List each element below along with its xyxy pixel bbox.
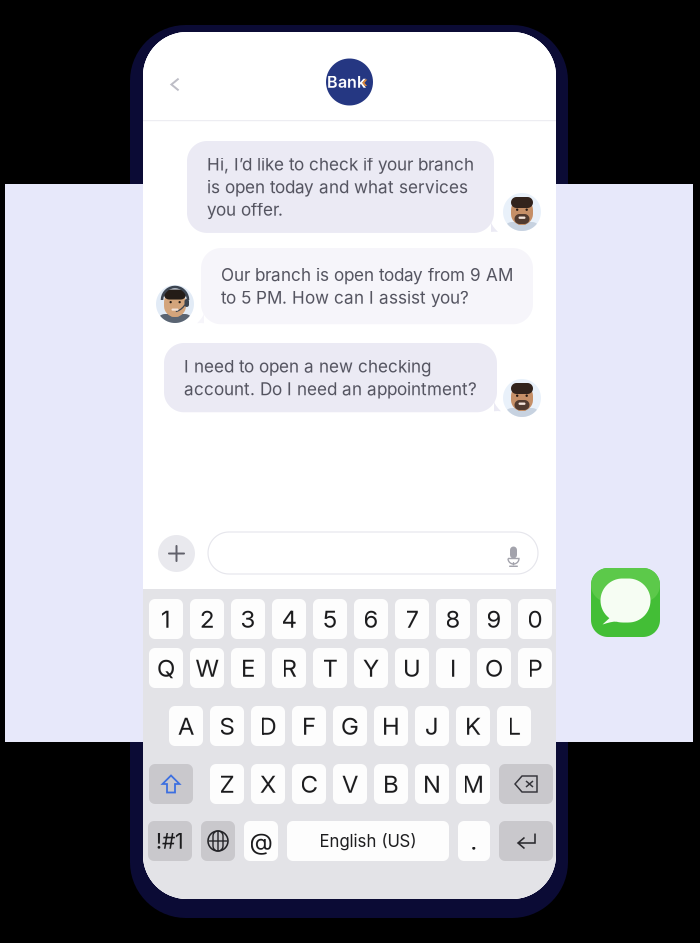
staticText: C	[300, 769, 317, 798]
button[interactable]: D	[251, 706, 285, 746]
staticText: F	[302, 711, 316, 740]
staticText: 6	[363, 604, 378, 633]
staticText: S	[219, 711, 234, 740]
staticText: English (US)	[319, 831, 416, 851]
button[interactable]: !#1	[148, 821, 192, 861]
staticText: k	[357, 72, 366, 92]
button[interactable]: 7	[395, 599, 429, 639]
button[interactable]: H	[374, 706, 408, 746]
staticText: 4	[281, 604, 296, 633]
staticText: Our branch is open today from 9 AM	[221, 264, 513, 285]
button[interactable]: M	[456, 764, 490, 804]
staticText: A	[178, 711, 194, 740]
button[interactable]: Y	[354, 648, 388, 688]
button[interactable]: K	[456, 706, 490, 746]
staticText: Q	[157, 653, 175, 682]
button[interactable]: F	[292, 706, 326, 746]
staticText: 3	[240, 604, 255, 633]
staticText: P	[527, 653, 542, 682]
button[interactable]: Back	[153, 62, 197, 106]
button[interactable]: P	[518, 648, 552, 688]
staticText: X	[260, 769, 276, 798]
staticText: W	[195, 653, 218, 682]
staticText: account. Do I need an appointment?	[184, 379, 477, 399]
staticText: J	[425, 711, 439, 740]
staticText: H	[382, 711, 400, 740]
button[interactable]: 9	[477, 599, 511, 639]
staticText: 8	[445, 604, 460, 633]
staticText: .	[470, 826, 477, 855]
button[interactable]: B	[374, 764, 408, 804]
button[interactable]: Message	[208, 532, 538, 574]
staticText: !#1	[156, 828, 184, 854]
button[interactable]: T	[313, 648, 347, 688]
staticText: Y	[363, 653, 379, 682]
staticText: 1	[161, 604, 171, 633]
button[interactable]: O	[477, 648, 511, 688]
staticText: G	[341, 711, 359, 740]
button[interactable]: V	[333, 764, 367, 804]
staticText: 7	[405, 604, 418, 633]
staticText: I	[450, 653, 456, 682]
button[interactable]: Shift	[149, 764, 193, 804]
staticText: O	[485, 653, 503, 682]
button[interactable]: 8	[436, 599, 470, 639]
staticText: Z	[219, 769, 234, 798]
button[interactable]: Z	[210, 764, 244, 804]
staticText: 5	[323, 604, 337, 633]
staticText: @	[249, 826, 272, 855]
staticText: U	[403, 653, 421, 682]
button[interactable]: R	[272, 648, 306, 688]
button[interactable]: 3	[231, 599, 265, 639]
staticText: is open today and what services	[207, 177, 468, 197]
staticText: ‹	[361, 73, 367, 91]
button[interactable]: Bank	[326, 58, 373, 105]
staticText: 0	[527, 604, 542, 633]
button[interactable]: Q	[149, 648, 183, 688]
button[interactable]: Next keyboard	[201, 821, 235, 861]
staticText: B	[383, 769, 399, 798]
button[interactable]: English (US)	[287, 821, 449, 861]
button[interactable]: N	[415, 764, 449, 804]
staticText: Ban	[327, 72, 357, 92]
staticText: L	[507, 711, 520, 740]
staticText: K	[465, 711, 481, 740]
button[interactable]: Add attachment	[158, 535, 195, 572]
staticText: to 5 PM. How can I assist you?	[221, 287, 469, 308]
button[interactable]: @	[244, 821, 278, 861]
staticText: V	[342, 769, 358, 798]
button[interactable]: E	[231, 648, 265, 688]
button[interactable]: W	[190, 648, 224, 688]
staticText: Hi, I’d like to check if your branch	[207, 154, 474, 175]
button[interactable]: Return	[499, 821, 553, 861]
button[interactable]: 6	[354, 599, 388, 639]
button[interactable]: J	[415, 706, 449, 746]
staticText: you offer.	[207, 199, 283, 220]
staticText: 2	[200, 604, 214, 633]
button[interactable]: 5	[313, 599, 347, 639]
button[interactable]: I	[436, 648, 470, 688]
staticText: E	[241, 653, 255, 682]
staticText: D	[259, 711, 276, 740]
button[interactable]: 4	[272, 599, 306, 639]
button[interactable]: 2	[190, 599, 224, 639]
staticText: N	[423, 769, 441, 798]
button[interactable]: .	[458, 821, 490, 861]
button[interactable]: A	[169, 706, 203, 746]
button[interactable]: U	[395, 648, 429, 688]
button[interactable]: 0	[518, 599, 552, 639]
button[interactable]: Delete	[499, 764, 553, 804]
staticText: M	[462, 769, 483, 798]
staticText: I need to open a new checking	[184, 356, 431, 377]
button[interactable]: G	[333, 706, 367, 746]
staticText: R	[281, 653, 296, 682]
button[interactable]: L	[497, 706, 531, 746]
button[interactable]: S	[210, 706, 244, 746]
button[interactable]: X	[251, 764, 285, 804]
button[interactable]: 1	[149, 599, 183, 639]
staticText: T	[322, 653, 337, 682]
staticText: 9	[486, 604, 501, 633]
button[interactable]: C	[292, 764, 326, 804]
